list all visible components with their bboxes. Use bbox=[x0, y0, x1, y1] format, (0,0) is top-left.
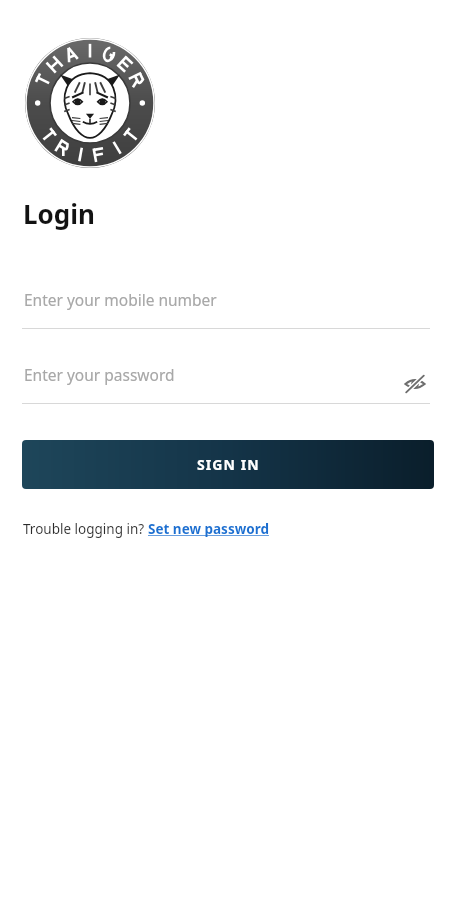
staticText: Set new password bbox=[148, 520, 269, 538]
staticText: Login bbox=[23, 196, 95, 231]
button[interactable]: Show password bbox=[400, 369, 430, 399]
button[interactable]: Enter your password bbox=[22, 364, 430, 404]
button[interactable]: SIGN IN bbox=[22, 440, 434, 489]
staticText: Trouble logging in? bbox=[23, 520, 148, 538]
staticText: SIGN IN bbox=[197, 455, 260, 474]
button[interactable]: Set new password bbox=[148, 520, 269, 538]
staticText: Enter your password bbox=[24, 364, 175, 385]
button[interactable]: Enter your mobile number bbox=[22, 289, 430, 329]
staticText: Enter your mobile number bbox=[24, 289, 217, 310]
